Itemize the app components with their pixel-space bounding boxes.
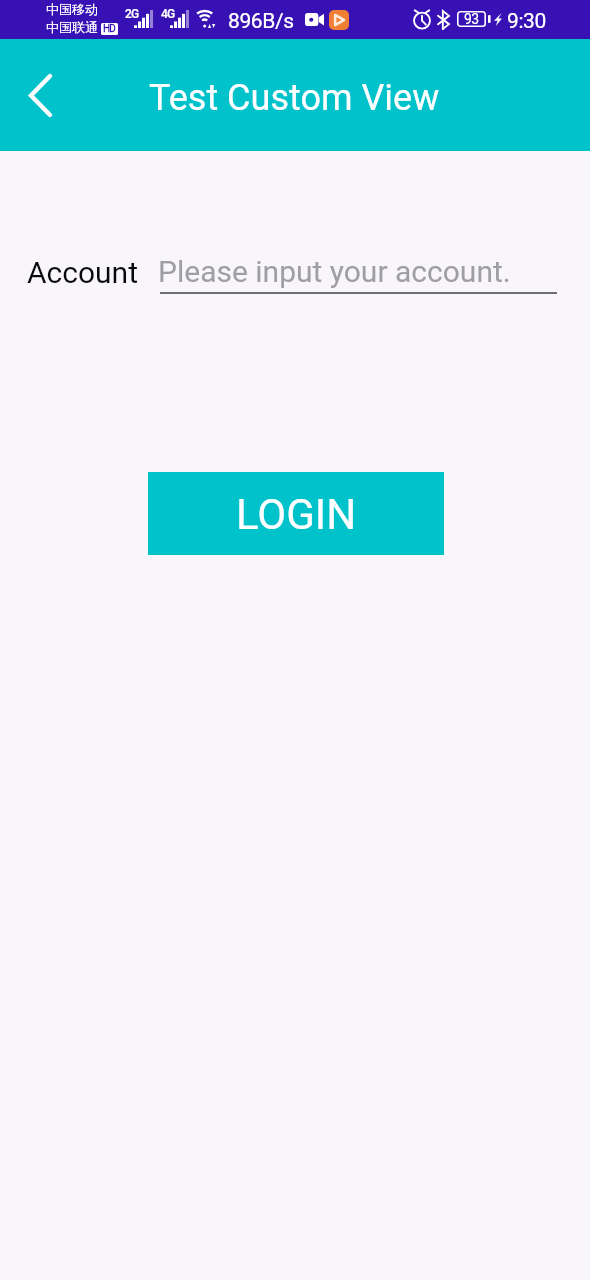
button[interactable]: LOGIN <box>148 472 444 555</box>
staticText: 93 <box>464 11 479 27</box>
staticText: Test Custom View <box>149 77 440 119</box>
staticText: 9:30 <box>507 9 546 34</box>
staticText: Account <box>27 255 139 290</box>
staticText: 4G <box>161 7 175 21</box>
staticText: LOGIN <box>236 490 357 539</box>
button[interactable]: Back <box>4 59 76 131</box>
staticText: Please input your account. <box>158 254 511 289</box>
staticText: HD <box>103 23 116 35</box>
staticText: 中国移动 <box>46 1 98 17</box>
staticText: 中国联通 <box>46 19 98 35</box>
staticText: 896B/s <box>228 9 294 34</box>
button[interactable]: Please input your account. <box>158 248 557 294</box>
staticText: 2G <box>125 7 139 21</box>
